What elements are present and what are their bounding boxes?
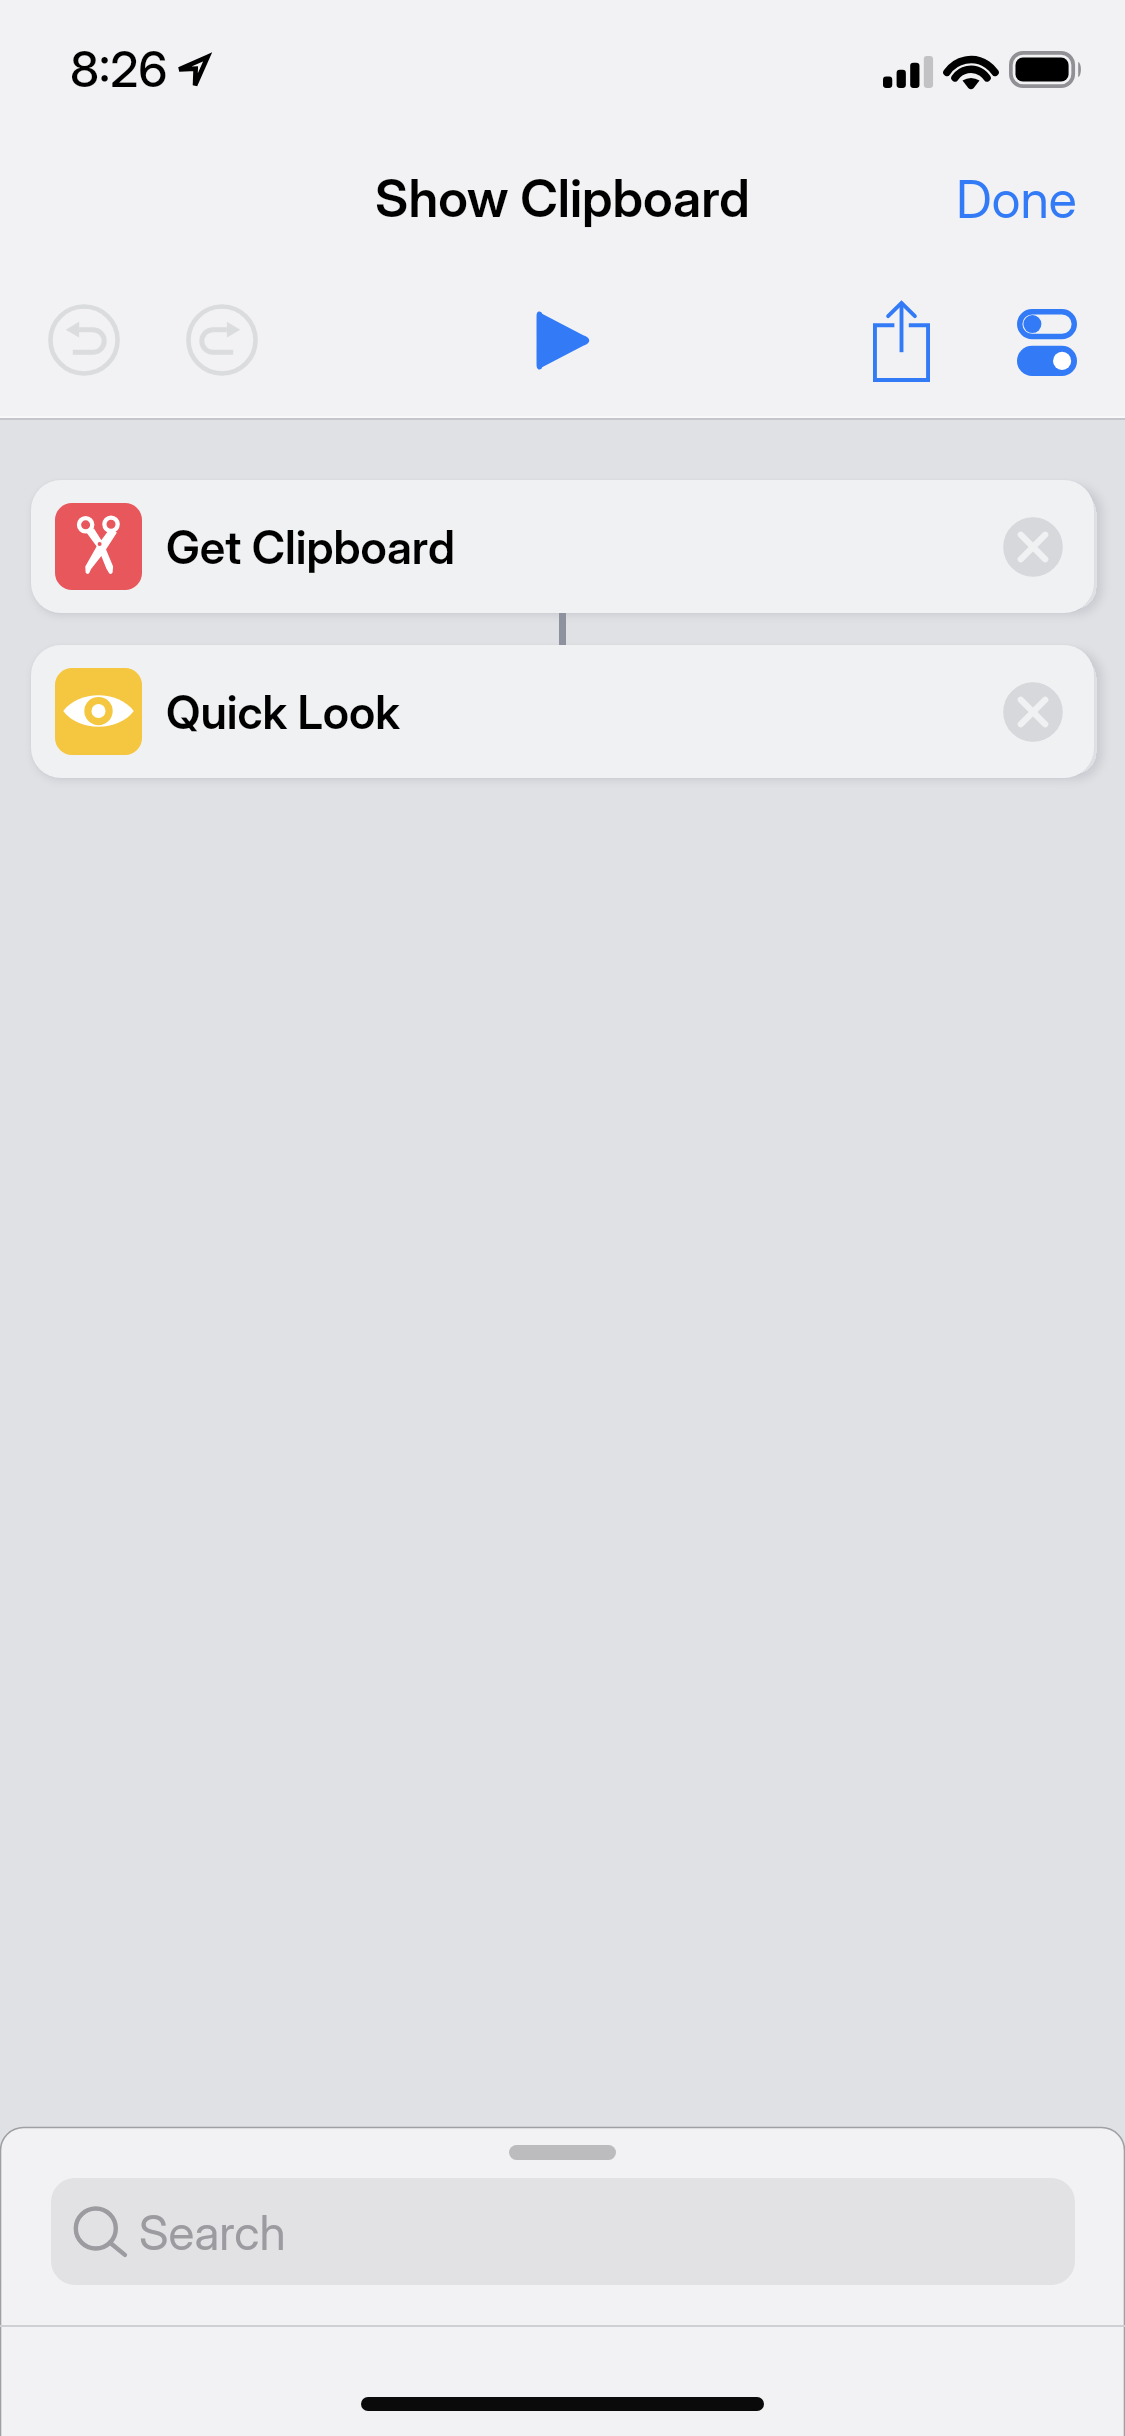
button[interactable]: Done: [908, 147, 1125, 251]
staticText: Quick Look: [166, 684, 400, 740]
staticText: Show Clipboard: [375, 167, 750, 230]
button[interactable]: Share: [846, 286, 956, 396]
button[interactable]: Remove Get Clipboard: [1003, 517, 1063, 577]
button[interactable]: Run shortcut: [508, 285, 618, 395]
button[interactable]: Shortcut settings: [992, 287, 1102, 397]
button[interactable]: Get Clipboard: [31, 480, 1094, 613]
button[interactable]: Redo: [174, 292, 270, 388]
button[interactable]: Undo: [36, 292, 132, 388]
staticText: Done: [956, 168, 1077, 231]
staticText: Search: [139, 2203, 286, 2261]
staticText: 8:26: [70, 40, 168, 99]
button[interactable]: Search: [51, 2178, 1075, 2285]
button[interactable]: Remove Quick Look: [1003, 682, 1063, 742]
button[interactable]: Quick Look: [31, 645, 1094, 778]
staticText: Get Clipboard: [166, 519, 455, 575]
